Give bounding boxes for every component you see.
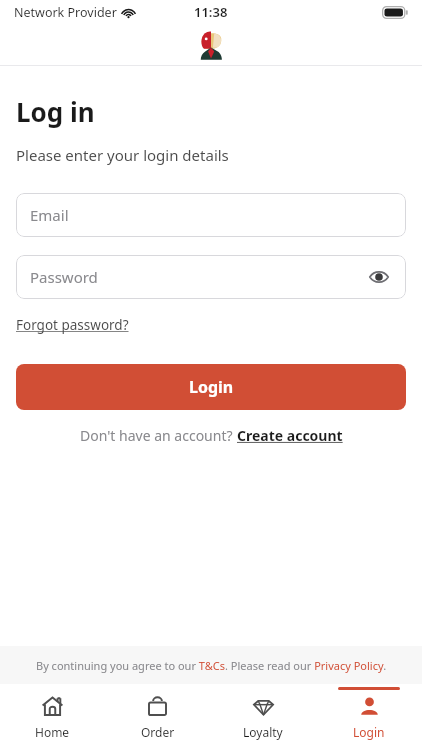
staticText: Login: [353, 724, 385, 740]
other: App logo: [195, 29, 227, 61]
staticText: Home: [35, 724, 70, 740]
button[interactable]: Order: [105, 684, 210, 750]
staticText: Please enter your login details: [16, 145, 229, 165]
button[interactable]: Email: [16, 193, 406, 237]
staticText: Network Provider: [14, 4, 117, 21]
staticText: By continuing you agree to our T&Cs. Ple…: [36, 658, 387, 673]
button[interactable]: Show password: [366, 264, 392, 290]
button[interactable]: Home: [0, 684, 105, 750]
button[interactable]: Login: [316, 684, 422, 750]
staticText: Login: [189, 376, 234, 398]
button[interactable]: Create account: [237, 426, 343, 445]
staticText: Don't have an account?: [80, 426, 237, 445]
button[interactable]: Login: [16, 364, 406, 410]
staticText: Order: [141, 724, 175, 740]
staticText: Log in: [16, 94, 95, 129]
staticText: Password: [30, 267, 98, 287]
staticText: Create account: [237, 426, 343, 445]
staticText: Email: [30, 205, 69, 225]
staticText: Forgot password?: [16, 316, 129, 334]
staticText: 11:38: [194, 3, 228, 21]
button[interactable]: Password: [16, 255, 406, 299]
button[interactable]: Loyalty: [210, 684, 316, 750]
button[interactable]: Forgot password?: [16, 316, 129, 334]
staticText: Loyalty: [243, 724, 283, 740]
